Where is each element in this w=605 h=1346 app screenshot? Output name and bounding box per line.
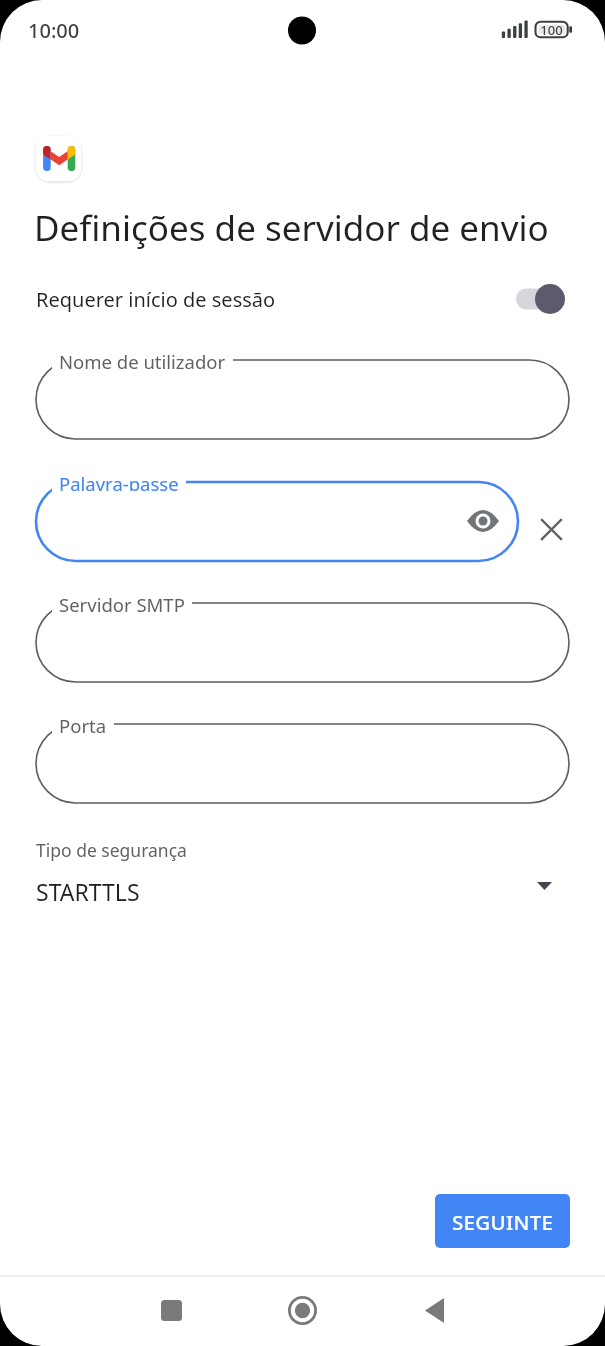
staticText: STARTTLS [36,876,140,907]
button[interactable]: SEGUINTE [435,1194,570,1248]
staticText: Definições de servidor de envio [34,204,549,252]
staticText: 100 [535,21,568,39]
staticText: Servidor SMTP [59,592,185,612]
button[interactable]: Servidor SMTP [0,591,573,694]
button[interactable]: Recents [131,1275,211,1346]
button[interactable]: Requerer início de sessão [516,281,565,317]
staticText: Tipo de segurança [36,838,187,862]
staticText: Palavra-passe [59,471,179,491]
button[interactable]: Nome de utilizador [0,348,573,451]
staticText: Porta [59,713,107,733]
button[interactable]: Porta [0,712,573,815]
staticText: SEGUINTE [452,1208,554,1236]
button[interactable]: Requerer início de sessão [0,275,605,323]
button[interactable]: Palavra-passe [0,470,522,573]
button[interactable]: Back [394,1275,474,1346]
staticText: 10:00 [28,17,80,44]
button[interactable]: Home [262,1275,342,1346]
button[interactable]: Mostrar palavra-passe [461,499,505,543]
button[interactable]: Clear [529,507,574,552]
staticText: Requerer início de sessão [36,286,276,313]
staticText: Nome de utilizador [59,349,226,369]
button[interactable]: Tipo de segurança [0,830,605,915]
